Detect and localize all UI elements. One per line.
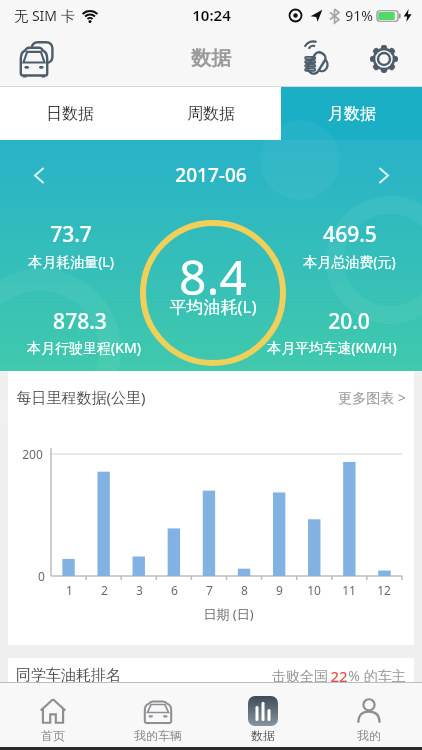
staticText: 2017-06 — [175, 162, 247, 188]
staticText: 我的 — [357, 728, 381, 743]
staticText: 数据 — [191, 46, 231, 71]
staticText: 3 — [136, 582, 143, 598]
staticText: 周数据 — [187, 104, 235, 124]
staticText: 6 — [171, 582, 178, 598]
button[interactable]: 日数据 — [0, 87, 140, 140]
button[interactable] — [16, 37, 60, 81]
button[interactable] — [364, 39, 404, 79]
staticText: 日期 (日) — [203, 605, 254, 623]
staticText: 8.4 — [179, 244, 247, 309]
staticText: 同学车油耗排名 — [16, 666, 121, 682]
button[interactable]: 数据 — [210, 683, 316, 750]
staticText: 0 — [38, 568, 45, 584]
staticText: 10 — [307, 582, 321, 598]
staticText: 469.5 — [323, 220, 377, 249]
staticText: 12 — [377, 582, 391, 598]
staticText: 11 — [342, 582, 356, 598]
staticText: 本月行驶里程(KM) — [27, 338, 141, 357]
button[interactable]: 月数据 — [281, 87, 422, 140]
staticText: 2 — [101, 582, 108, 598]
staticText: 8 — [241, 582, 248, 598]
button[interactable]: 我的 — [316, 683, 422, 750]
button[interactable]: 首页 — [0, 683, 105, 750]
staticText: 20.0 — [328, 307, 370, 336]
button[interactable]: 更多图表 > — [338, 388, 406, 407]
staticText: 1 — [66, 582, 73, 598]
staticText: % 的车主 — [348, 666, 406, 682]
button[interactable] — [372, 163, 396, 187]
staticText: 7 — [206, 582, 213, 598]
button[interactable]: 周数据 — [140, 87, 281, 140]
staticText: 878.3 — [53, 307, 107, 336]
staticText: 200 — [22, 446, 43, 462]
staticText: 无 SIM 卡 — [14, 6, 75, 25]
staticText: 我的车辆 — [134, 728, 182, 743]
staticText: 击败全国 — [270, 666, 330, 682]
staticText: 本月耗油量(L) — [28, 252, 114, 271]
staticText: 数据 — [251, 728, 275, 743]
button[interactable]: 我的车辆 — [105, 683, 210, 750]
staticText: 首页 — [41, 728, 65, 743]
staticText: 10:24 — [192, 5, 231, 25]
staticText: 月数据 — [328, 104, 376, 124]
staticText: 本月平均车速(KM/H) — [267, 338, 397, 357]
staticText: 本月总油费(元) — [303, 252, 396, 271]
button[interactable] — [26, 163, 50, 187]
staticText: 22 — [330, 666, 348, 682]
staticText: 平均油耗(L) — [169, 295, 257, 318]
button[interactable] — [296, 39, 336, 79]
staticText: 73.7 — [50, 220, 92, 249]
staticText: 每日里程数据(公里) — [16, 387, 146, 407]
staticText: 9 — [276, 582, 283, 598]
staticText: 更多图表 > — [338, 388, 406, 407]
staticText: 日数据 — [46, 104, 94, 124]
staticText: 91% — [345, 6, 373, 25]
